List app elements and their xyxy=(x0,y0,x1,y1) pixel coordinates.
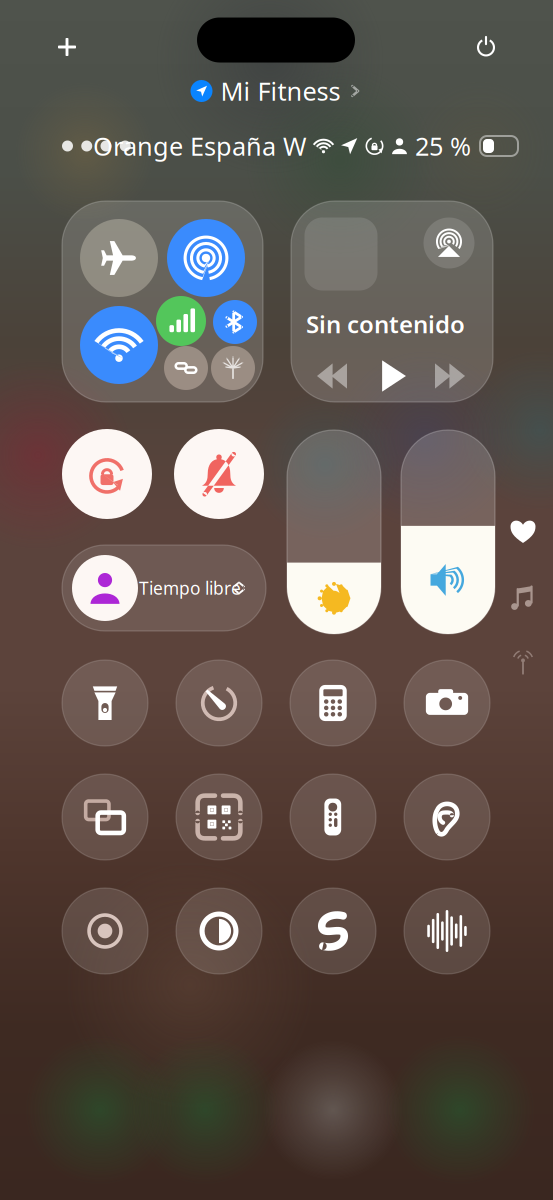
button[interactable]: Play xyxy=(369,352,417,400)
button[interactable]: Add xyxy=(47,27,87,67)
button[interactable]: Screen Mirroring xyxy=(62,774,148,860)
button[interactable]: Satellite xyxy=(211,346,255,390)
button[interactable]: Rewind xyxy=(308,352,356,400)
button[interactable]: Flashlight xyxy=(62,660,148,746)
button[interactable]: Airplane Mode xyxy=(80,219,158,297)
staticText: Mi Fitness xyxy=(220,74,340,108)
button[interactable]: Hearing xyxy=(404,774,490,860)
button[interactable]: Camera xyxy=(404,660,490,746)
staticText: Sin contenido xyxy=(306,308,465,340)
button[interactable]: Bluetooth xyxy=(213,300,257,344)
button[interactable]: Calculator xyxy=(290,660,376,746)
staticText: 25 % xyxy=(415,129,471,163)
button[interactable]: Rotation Lock xyxy=(62,429,152,519)
button[interactable]: Power xyxy=(466,26,506,66)
button[interactable]: Signal xyxy=(156,296,206,346)
button[interactable]: Personal Hotspot xyxy=(164,346,208,390)
button[interactable]: Dark Mode xyxy=(176,888,262,974)
button[interactable]: Mi Fitness xyxy=(190,74,361,108)
button[interactable]: Silent Mode xyxy=(174,429,264,519)
button[interactable]: Cellular Data xyxy=(167,219,245,297)
button[interactable]: Tiempo libre xyxy=(62,545,266,631)
button[interactable]: Code Scanner xyxy=(176,774,262,860)
button[interactable]: Apple TV Remote xyxy=(290,774,376,860)
button[interactable]: Music Recognition xyxy=(290,888,376,974)
staticText: Orange España W xyxy=(93,129,307,163)
staticText: Tiempo libre xyxy=(139,576,241,599)
button[interactable]: Timer xyxy=(176,660,262,746)
button[interactable]: Sound Actions xyxy=(404,888,490,974)
button[interactable]: Fast Forward xyxy=(426,352,474,400)
button[interactable]: Wi-Fi xyxy=(80,306,158,384)
button[interactable]: AirPlay xyxy=(423,217,474,268)
button[interactable]: Screen Recording xyxy=(62,888,148,974)
